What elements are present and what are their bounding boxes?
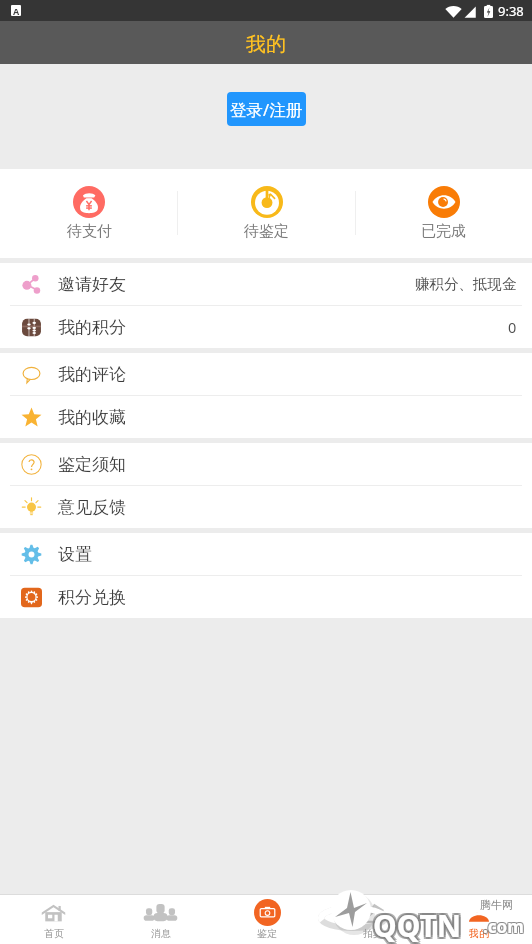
staticText: 赚积分、抵现金	[415, 275, 517, 293]
staticText: 0	[508, 317, 517, 337]
button[interactable]: 积分兑换	[0, 576, 532, 618]
staticText: 我的收藏	[58, 407, 126, 428]
staticText: 我的	[469, 927, 489, 940]
button[interactable]: 我的评论	[0, 353, 532, 395]
staticText: 拍卖	[363, 927, 383, 940]
button[interactable]: 鉴定须知	[0, 443, 532, 485]
button[interactable]: 我的收藏	[0, 396, 532, 438]
staticText: 我的积分	[58, 317, 126, 338]
staticText: 消息	[151, 927, 171, 940]
staticText: .com	[482, 914, 523, 937]
staticText: 我的	[246, 32, 286, 57]
button[interactable]: 已完成	[355, 169, 532, 258]
staticText: .com	[483, 914, 524, 937]
staticText: 待支付	[67, 222, 112, 241]
staticText: 9:38	[498, 2, 524, 20]
button[interactable]: 意见反馈	[0, 486, 532, 528]
staticText: QQTN	[371, 903, 460, 944]
staticText: 设置	[58, 544, 92, 565]
staticText: QQTN	[371, 907, 460, 944]
button[interactable]: 我的	[426, 895, 532, 944]
button[interactable]: 待支付	[0, 169, 178, 258]
staticText: 登录/注册	[230, 98, 303, 121]
staticText: 鉴定须知	[58, 454, 126, 475]
staticText: .com	[484, 915, 525, 938]
button[interactable]: 我的积分	[0, 306, 532, 348]
staticText: 积分兑换	[58, 587, 126, 608]
staticText: .com	[483, 916, 524, 939]
staticText: QQTN	[373, 907, 462, 944]
staticText: A	[13, 5, 20, 16]
staticText: .com	[482, 915, 523, 938]
button[interactable]: 拍卖	[320, 895, 426, 944]
staticText: .com	[482, 916, 523, 939]
staticText: QQTN	[375, 905, 464, 944]
button[interactable]: 登录/注册	[227, 92, 306, 126]
staticText: QQTN	[375, 907, 464, 944]
staticText: 待鉴定	[244, 222, 289, 241]
staticText: 我的评论	[58, 364, 126, 385]
staticText: 首页	[44, 927, 64, 940]
staticText: QQTN	[371, 905, 460, 944]
staticText: .com	[483, 915, 524, 938]
button[interactable]: 首页	[0, 895, 107, 944]
staticText: QQTN	[375, 903, 464, 944]
staticText: 意见反馈	[58, 497, 126, 518]
staticText: 腾牛网	[480, 898, 513, 912]
staticText: .com	[484, 914, 525, 937]
staticText: QQTN	[373, 903, 462, 944]
button[interactable]: 待鉴定	[178, 169, 355, 258]
button[interactable]: 设置	[0, 533, 532, 575]
staticText: 邀请好友	[58, 274, 126, 295]
button[interactable]: 消息	[107, 895, 214, 944]
button[interactable]: 邀请好友	[0, 263, 532, 305]
staticText: 已完成	[421, 222, 466, 241]
button[interactable]: 鉴定	[214, 895, 320, 944]
staticText: 鉴定	[257, 927, 277, 940]
staticText: .com	[484, 916, 525, 939]
staticText: QQTN	[373, 905, 462, 944]
